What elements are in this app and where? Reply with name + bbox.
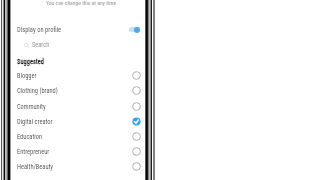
button[interactable]: Health/Beauty — [11, 159, 145, 174]
staticText: Clothing (brand) — [17, 87, 58, 95]
button[interactable]: Education — [11, 129, 145, 144]
other: Display on profile toggle — [129, 27, 140, 32]
staticText: Digital creator — [17, 118, 53, 126]
staticText: Blogger — [17, 72, 37, 80]
button[interactable]: Blogger — [11, 68, 145, 83]
button[interactable]: Search — [11, 39, 145, 51]
staticText: Health/Beauty — [17, 163, 54, 171]
other: Search — [24, 43, 29, 48]
button[interactable]: Community — [11, 99, 145, 114]
staticText: Community — [17, 103, 46, 111]
button[interactable]: Display on profile — [11, 22, 145, 37]
staticText: Entrepreneur — [17, 148, 50, 156]
staticText: You can change this at any time — [14, 0, 148, 7]
button[interactable]: Clothing (brand) — [11, 83, 145, 98]
staticText: Suggested — [17, 58, 44, 66]
staticText: Display on profile — [17, 26, 62, 34]
button[interactable]: Digital creator — [11, 114, 145, 129]
button[interactable]: Entrepreneur — [11, 144, 145, 159]
staticText: Search — [32, 41, 50, 49]
staticText: Education — [17, 133, 43, 141]
